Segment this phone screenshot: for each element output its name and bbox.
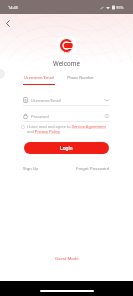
button[interactable]: Sign Up	[23, 166, 38, 171]
other: Show password	[104, 114, 110, 118]
button[interactable]: Password	[23, 111, 110, 121]
button[interactable]: Guest Mode	[55, 256, 79, 261]
button[interactable]: Login	[24, 142, 109, 154]
staticText: 14:45	[8, 5, 18, 10]
button[interactable]: Username/Email	[23, 75, 55, 85]
staticText: Login	[60, 145, 73, 151]
staticText: 95%	[116, 5, 124, 10]
staticText: Password	[31, 114, 49, 119]
button[interactable]: Forgot Password	[76, 166, 110, 171]
staticText: PRO	[64, 50, 70, 53]
button[interactable]: Agree to terms	[21, 125, 25, 129]
button[interactable]: Back	[1, 16, 15, 30]
button[interactable]: Username/Email	[23, 95, 110, 105]
staticText: Welcome	[53, 60, 80, 68]
staticText: I have read and agree to Service Agreeme…	[27, 124, 111, 134]
button[interactable]: Language	[0, 69, 5, 79]
staticText: Username/Email	[24, 75, 54, 80]
button[interactable]: Phone Number	[67, 75, 94, 80]
staticText: Username/Email	[31, 98, 61, 103]
